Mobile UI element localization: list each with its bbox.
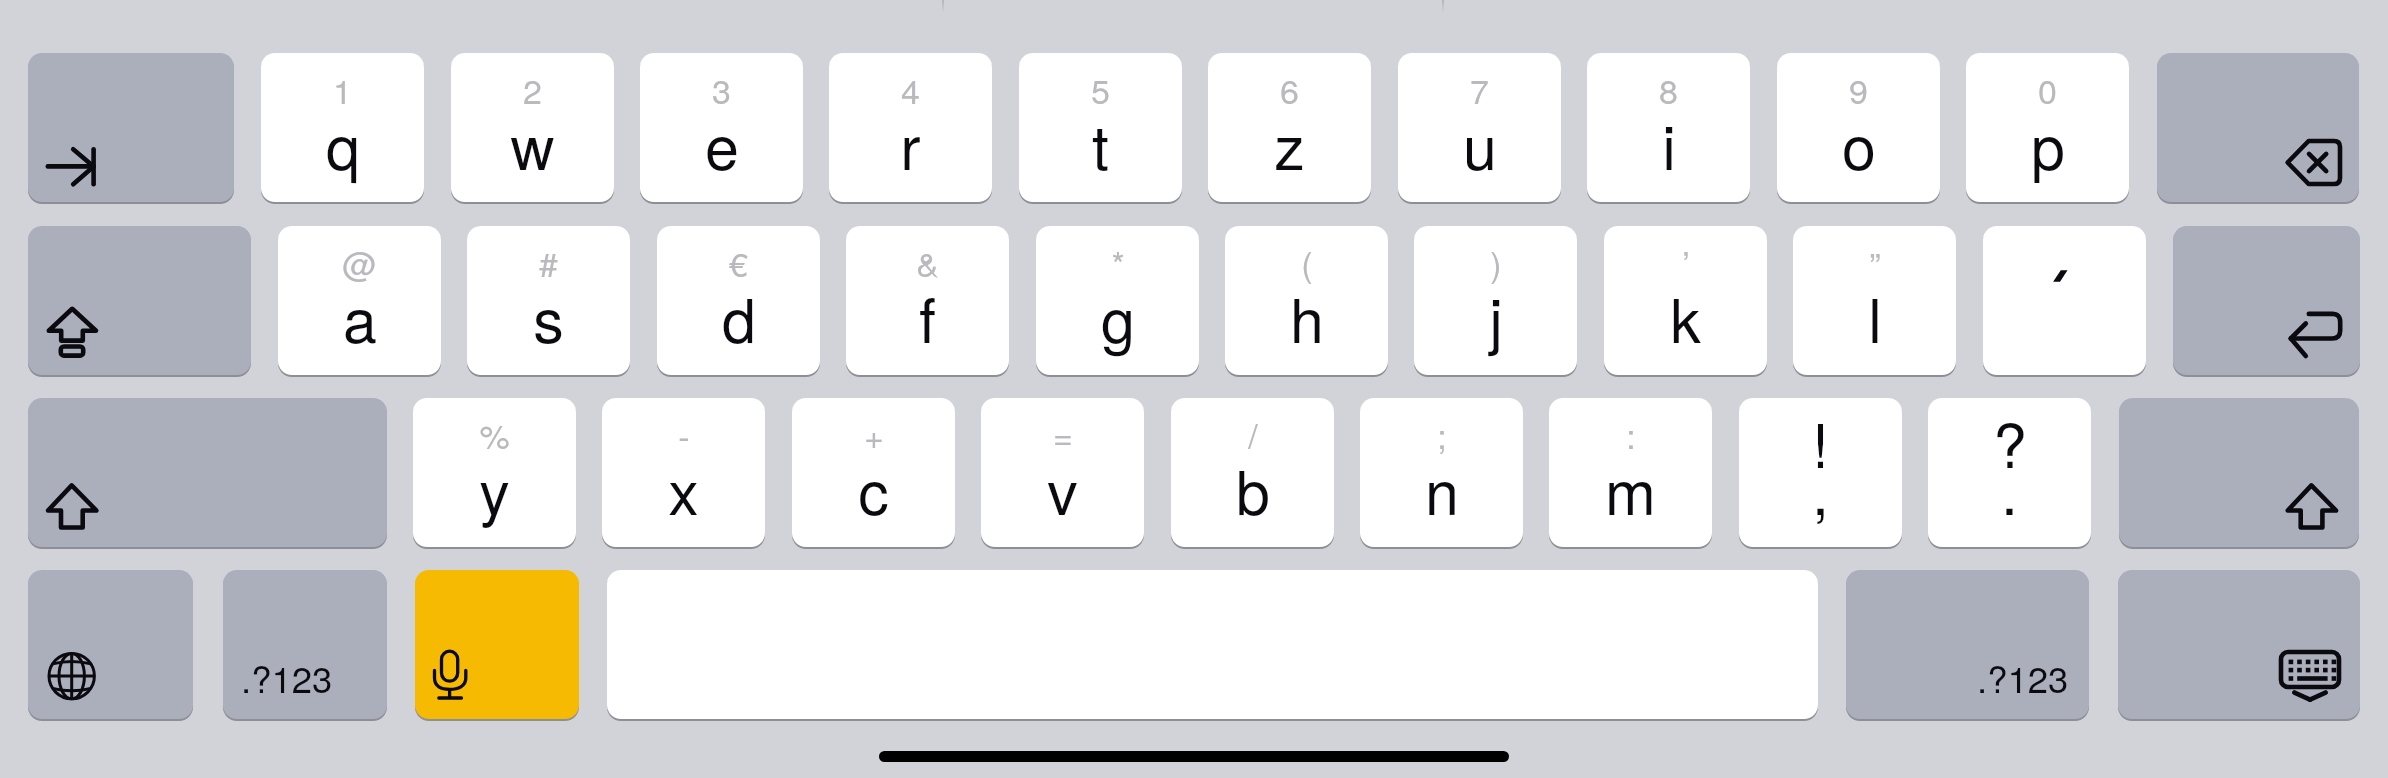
staticText: l xyxy=(1868,273,1882,360)
button[interactable]: .?123 xyxy=(1846,570,2089,719)
staticText: & xyxy=(916,238,939,287)
staticText: t xyxy=(1092,100,1109,187)
button[interactable]: 9 xyxy=(1777,53,1940,202)
staticText: ’ xyxy=(1682,238,1690,287)
button[interactable]: Return xyxy=(2173,226,2360,375)
button[interactable]: ’ xyxy=(1604,226,1767,375)
button[interactable]: - xyxy=(602,398,765,547)
button[interactable]: + xyxy=(792,398,955,547)
button[interactable]: Hide keyboard xyxy=(2118,570,2360,719)
staticText: p xyxy=(2031,100,2065,187)
staticText: h xyxy=(1290,273,1324,360)
staticText: m xyxy=(1605,445,1656,532)
button[interactable]: = xyxy=(981,398,1144,547)
button[interactable]: & xyxy=(846,226,1009,375)
staticText: = xyxy=(1053,410,1073,459)
button[interactable]: 8 xyxy=(1587,53,1750,202)
button[interactable]: # xyxy=(467,226,630,375)
staticText: : xyxy=(1626,410,1636,459)
button[interactable]: 6 xyxy=(1208,53,1371,202)
button[interactable]: Shift xyxy=(28,398,387,547)
staticText: ; xyxy=(1437,410,1447,459)
staticText: f xyxy=(919,273,936,360)
staticText: c xyxy=(858,445,889,532)
button[interactable]: ) xyxy=(1414,226,1577,375)
button[interactable]: ” xyxy=(1793,226,1956,375)
staticText: / xyxy=(1248,410,1258,459)
button[interactable]: .?123 xyxy=(223,570,387,719)
staticText: k xyxy=(1670,273,1701,360)
staticText: j xyxy=(1489,273,1503,360)
button[interactable]: 3 xyxy=(640,53,803,202)
staticText: .?123 xyxy=(241,651,333,703)
button[interactable]: Tab xyxy=(28,53,234,202)
button[interactable]: 2 xyxy=(451,53,614,202)
staticText: y xyxy=(479,445,510,532)
staticText: x xyxy=(668,445,699,532)
staticText: @ xyxy=(342,238,377,287)
button[interactable]: 4 xyxy=(829,53,992,202)
button[interactable]: Shift xyxy=(2119,398,2359,547)
staticText: .?123 xyxy=(1977,651,2069,703)
staticText: 8 xyxy=(1659,65,1678,114)
staticText: ) xyxy=(1490,238,1502,287)
staticText: n xyxy=(1425,445,1459,532)
button[interactable]: ! xyxy=(1739,398,1902,547)
staticText: ? xyxy=(1993,398,2027,485)
button[interactable]: 5 xyxy=(1019,53,1182,202)
button[interactable]: % xyxy=(413,398,576,547)
staticText: u xyxy=(1463,100,1497,187)
staticText: 0 xyxy=(2038,65,2057,114)
staticText: 1 xyxy=(333,65,352,114)
staticText: a xyxy=(343,273,377,360)
staticText: 7 xyxy=(1470,65,1489,114)
staticText: ” xyxy=(1869,238,1881,287)
staticText: v xyxy=(1047,445,1078,532)
button[interactable]: ; xyxy=(1360,398,1523,547)
button[interactable]: : xyxy=(1549,398,1712,547)
button[interactable]: ? xyxy=(1928,398,2091,547)
staticText: ( xyxy=(1301,238,1313,287)
button[interactable]: € xyxy=(657,226,820,375)
staticText: w xyxy=(510,100,555,187)
staticText: + xyxy=(864,410,884,459)
staticText: ! xyxy=(1812,398,1829,485)
button[interactable]: * xyxy=(1036,226,1199,375)
staticText: r xyxy=(900,100,921,187)
staticText: € xyxy=(729,238,748,287)
staticText: , xyxy=(1812,445,1829,532)
button[interactable]: Voice input xyxy=(415,570,579,719)
staticText: z xyxy=(1274,100,1305,187)
staticText: % xyxy=(479,410,510,459)
button[interactable]: 7 xyxy=(1398,53,1561,202)
staticText: 9 xyxy=(1849,65,1868,114)
staticText: s xyxy=(533,273,564,360)
staticText: d xyxy=(722,273,756,360)
staticText: 4 xyxy=(901,65,920,114)
staticText: i xyxy=(1662,100,1676,187)
staticText: o xyxy=(1842,100,1876,187)
staticText: 2 xyxy=(523,65,542,114)
staticText: e xyxy=(705,100,739,187)
button[interactable]: Backspace xyxy=(2157,53,2359,202)
button[interactable]: Acute accent xyxy=(1983,226,2146,375)
staticText: - xyxy=(678,410,690,459)
button[interactable]: 0 xyxy=(1966,53,2129,202)
staticText: g xyxy=(1101,273,1135,360)
button[interactable]: / xyxy=(1171,398,1334,547)
button[interactable]: 1 xyxy=(261,53,424,202)
staticText: q xyxy=(326,100,360,187)
staticText: . xyxy=(2001,445,2018,532)
button[interactable]: @ xyxy=(278,226,441,375)
staticText: b xyxy=(1236,445,1270,532)
staticText: 5 xyxy=(1091,65,1110,114)
button[interactable]: Caps lock xyxy=(28,226,251,375)
staticText: * xyxy=(1111,238,1125,287)
staticText: 6 xyxy=(1280,65,1299,114)
staticText: 3 xyxy=(712,65,731,114)
button[interactable]: Change keyboard xyxy=(28,570,193,719)
button[interactable]: ( xyxy=(1225,226,1388,375)
staticText: # xyxy=(539,238,558,287)
